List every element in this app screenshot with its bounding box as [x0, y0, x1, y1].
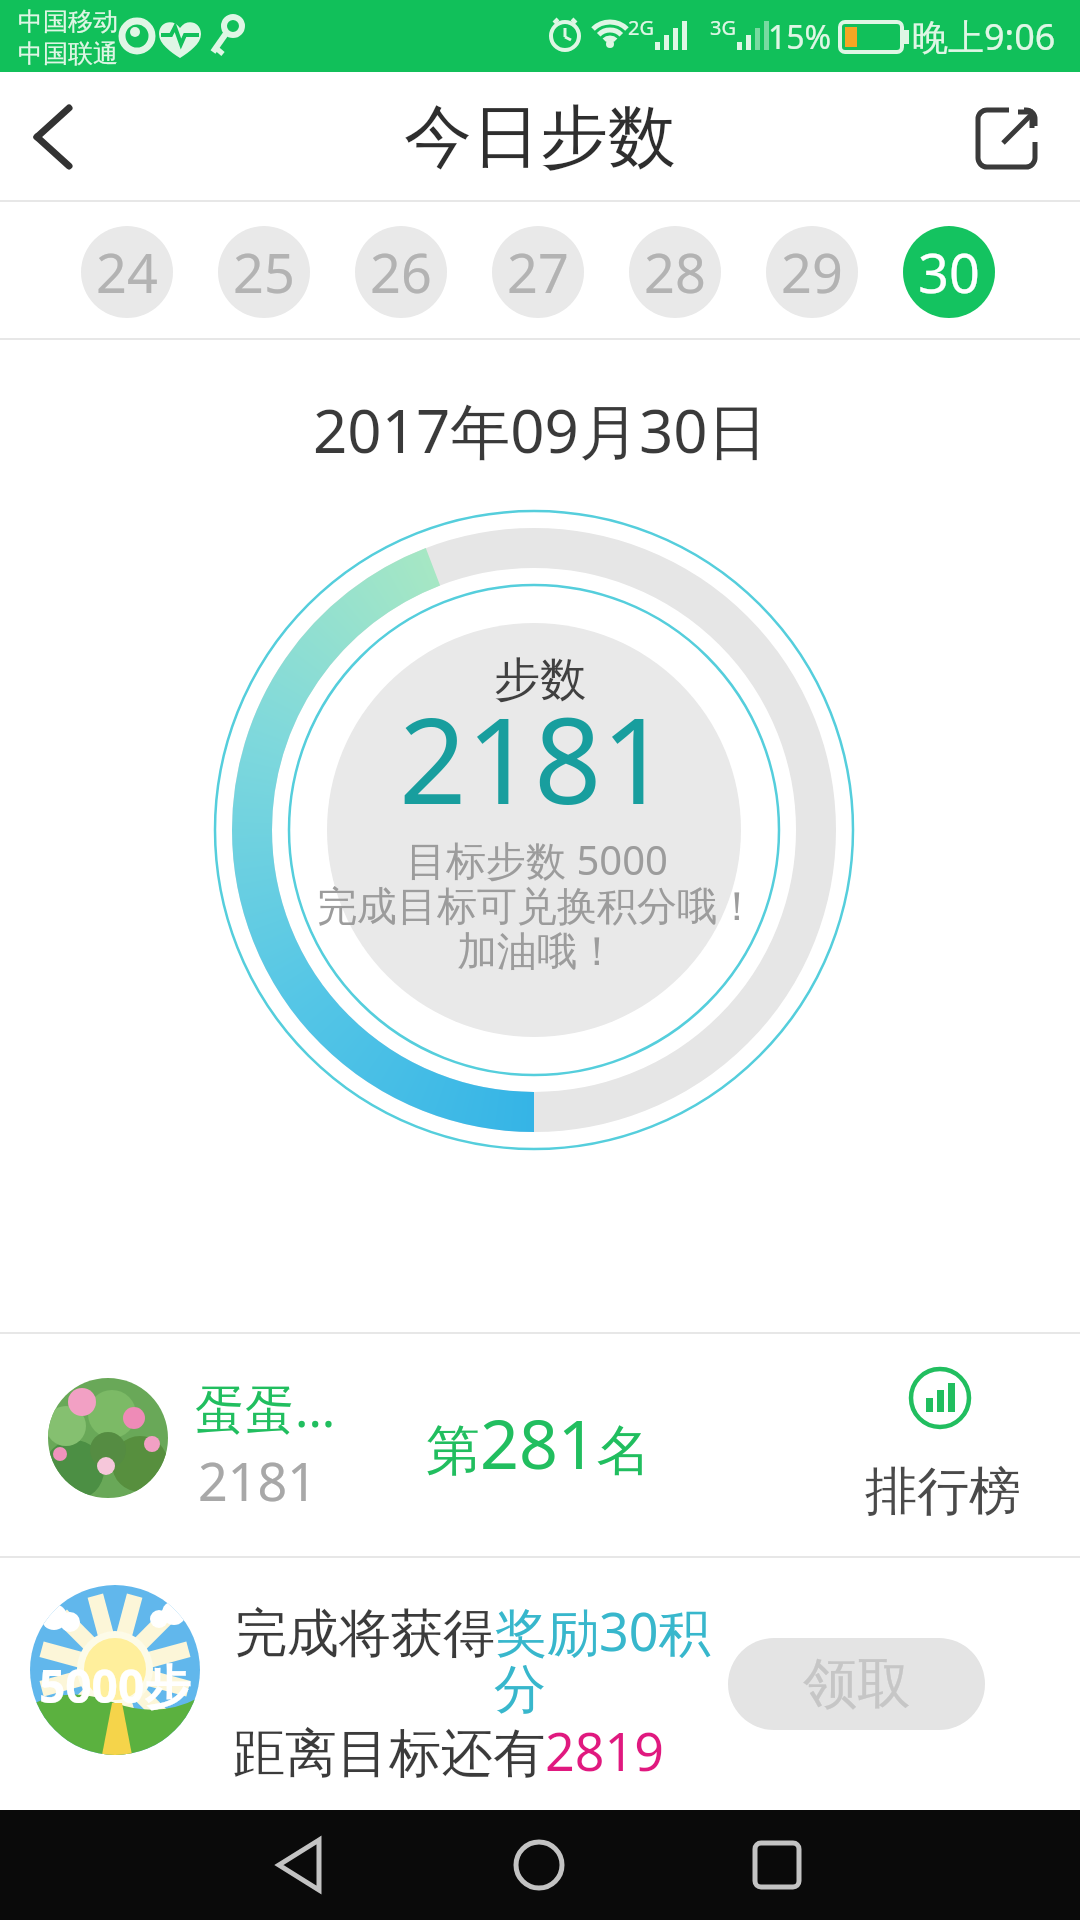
staticText: 25: [233, 235, 295, 309]
staticText: 2017年09月30日: [313, 389, 768, 471]
staticText: 分: [494, 1657, 546, 1723]
button[interactable]: 26: [355, 226, 447, 318]
button[interactable]: [239, 1815, 359, 1915]
staticText: 领取: [803, 1650, 911, 1718]
staticText: 完成目标可兑换积分哦！: [317, 881, 757, 931]
staticText: 3G: [710, 14, 736, 41]
staticText: 距离目标还有2819: [233, 1715, 664, 1786]
staticText: 中国联通: [18, 38, 118, 69]
button[interactable]: 29: [766, 226, 858, 318]
button[interactable]: 25: [218, 226, 310, 318]
button[interactable]: 24: [81, 226, 173, 318]
button[interactable]: [717, 1815, 837, 1915]
staticText: 30: [918, 235, 980, 309]
staticText: 第281名: [426, 1396, 651, 1489]
staticText: 蛋蛋...: [195, 1374, 336, 1442]
staticText: 28: [644, 235, 706, 309]
staticText: 26: [370, 235, 432, 309]
staticText: 目标步数 5000: [406, 832, 668, 887]
staticText: 29: [781, 235, 843, 309]
button[interactable]: [952, 92, 1062, 182]
staticText: 2181: [198, 1445, 317, 1516]
staticText: 晚上9:06: [912, 12, 1056, 61]
button[interactable]: [8, 92, 98, 182]
staticText: 5000步: [39, 1654, 191, 1717]
button[interactable]: [479, 1815, 599, 1915]
staticText: 今日步数: [404, 95, 676, 181]
button[interactable]: 28: [629, 226, 721, 318]
staticText: 2181: [399, 678, 669, 839]
button[interactable]: 30: [903, 226, 995, 318]
button[interactable]: 蛋蛋...: [0, 1334, 1080, 1556]
staticText: 15%: [768, 15, 832, 59]
staticText: 中国移动: [18, 6, 118, 37]
staticText: 排行榜: [865, 1459, 1021, 1525]
staticText: 2G: [628, 14, 654, 41]
staticText: 完成将获得奖励30积: [235, 1595, 711, 1666]
staticText: 步数: [494, 651, 586, 709]
staticText: 27: [507, 235, 569, 309]
button[interactable]: 27: [492, 226, 584, 318]
staticText: 24: [96, 235, 158, 309]
button[interactable]: 领取: [728, 1638, 985, 1730]
staticText: 加油哦！: [457, 926, 617, 976]
